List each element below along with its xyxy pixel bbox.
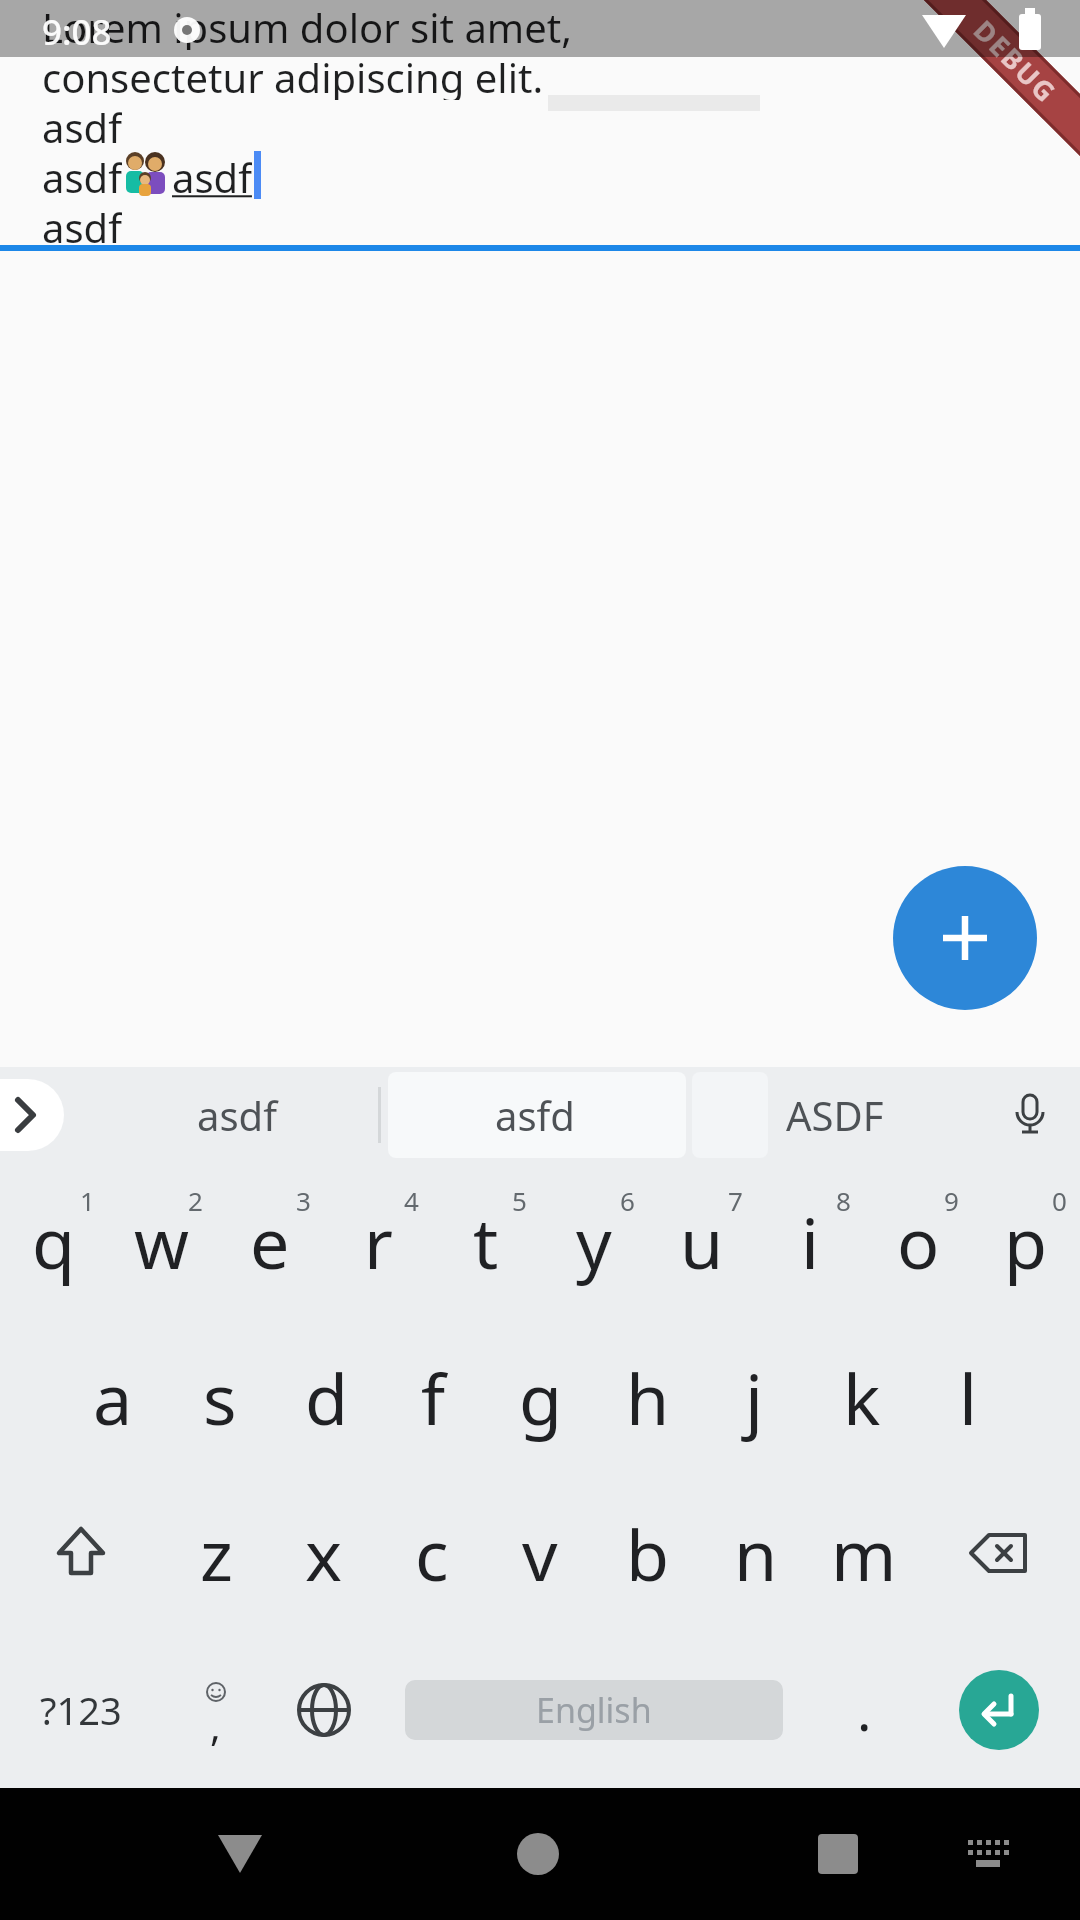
- staticText: asdf: [42, 150, 122, 200]
- staticText: r: [364, 1194, 393, 1289]
- button[interactable]: ,: [162, 1631, 270, 1788]
- button[interactable]: w: [108, 1163, 216, 1319]
- button[interactable]: e: [216, 1163, 324, 1319]
- staticText: k: [843, 1350, 881, 1445]
- staticText: 3: [296, 1183, 311, 1218]
- staticText: d: [305, 1350, 349, 1445]
- staticText: l: [959, 1350, 978, 1445]
- staticText: 6: [620, 1183, 635, 1218]
- staticText: asfd: [495, 1088, 575, 1142]
- button[interactable]: English: [378, 1631, 810, 1788]
- staticText: e: [250, 1194, 290, 1289]
- button[interactable]: b: [594, 1475, 702, 1631]
- button[interactable]: l: [915, 1319, 1022, 1475]
- button[interactable]: ?123: [0, 1631, 162, 1788]
- staticText: DEBUG: [966, 12, 1065, 111]
- staticText: f: [421, 1350, 446, 1445]
- staticText: s: [203, 1350, 237, 1445]
- button[interactable]: asfd: [435, 1067, 635, 1163]
- staticText: y: [576, 1194, 612, 1289]
- staticText: z: [200, 1506, 233, 1601]
- staticText: v: [522, 1506, 558, 1601]
- button[interactable]: d: [273, 1319, 380, 1475]
- button[interactable]: [766, 1812, 910, 1896]
- staticText: t: [473, 1194, 499, 1289]
- button[interactable]: q: [0, 1163, 108, 1319]
- button[interactable]: [1008, 1093, 1052, 1137]
- button[interactable]: z: [162, 1475, 270, 1631]
- staticText: asdf: [172, 150, 252, 200]
- button[interactable]: [918, 1475, 1080, 1631]
- button[interactable]: r: [324, 1163, 432, 1319]
- staticText: 2: [188, 1183, 203, 1218]
- staticText: 7: [728, 1183, 743, 1218]
- button[interactable]: n: [702, 1475, 810, 1631]
- button[interactable]: [0, 1079, 64, 1151]
- button[interactable]: p: [972, 1163, 1080, 1319]
- button[interactable]: v: [486, 1475, 594, 1631]
- staticText: asdf: [42, 100, 122, 150]
- staticText: asdf: [42, 200, 122, 250]
- staticText: j: [745, 1350, 764, 1445]
- button[interactable]: s: [166, 1319, 273, 1475]
- staticText: w: [134, 1194, 190, 1289]
- button[interactable]: [168, 1812, 312, 1896]
- staticText: English: [536, 1687, 652, 1733]
- staticText: g: [519, 1350, 563, 1445]
- staticText: p: [1004, 1194, 1048, 1289]
- button[interactable]: i: [756, 1163, 864, 1319]
- button[interactable]: o: [864, 1163, 972, 1319]
- staticText: 8: [836, 1183, 851, 1218]
- staticText: m: [831, 1506, 897, 1601]
- staticText: asdf: [197, 1088, 277, 1142]
- staticText: q: [32, 1194, 76, 1289]
- staticText: u: [680, 1194, 724, 1289]
- staticText: ?123: [40, 1684, 122, 1736]
- button[interactable]: [0, 1475, 162, 1631]
- button[interactable]: t: [432, 1163, 540, 1319]
- button[interactable]: [928, 1812, 1048, 1896]
- button[interactable]: u: [648, 1163, 756, 1319]
- button[interactable]: ASDF: [735, 1067, 935, 1163]
- staticText: x: [305, 1506, 343, 1601]
- staticText: consectetur adipiscing elit.: [42, 50, 544, 100]
- staticText: ,: [210, 1698, 221, 1752]
- button[interactable]: [466, 1812, 610, 1896]
- button[interactable]: g: [487, 1319, 594, 1475]
- button[interactable]: c: [378, 1475, 486, 1631]
- button[interactable]: f: [380, 1319, 487, 1475]
- staticText: 1: [80, 1183, 95, 1218]
- staticText: 9: [944, 1183, 959, 1218]
- staticText: ASDF: [786, 1088, 884, 1142]
- button[interactable]: y: [540, 1163, 648, 1319]
- staticText: .: [857, 1673, 872, 1747]
- button[interactable]: h: [594, 1319, 701, 1475]
- button[interactable]: a: [59, 1319, 166, 1475]
- staticText: o: [897, 1194, 940, 1289]
- button[interactable]: .: [810, 1631, 918, 1788]
- button[interactable]: [270, 1631, 378, 1788]
- button[interactable]: k: [808, 1319, 915, 1475]
- staticText: c: [415, 1506, 449, 1601]
- staticText: Lorem ipsum dolor sit amet,: [42, 0, 572, 50]
- staticText: i: [801, 1194, 820, 1289]
- button[interactable]: [918, 1631, 1080, 1788]
- staticText: 5: [512, 1183, 527, 1218]
- staticText: 0: [1052, 1183, 1067, 1218]
- button[interactable]: x: [270, 1475, 378, 1631]
- staticText: a: [93, 1350, 133, 1445]
- staticText: 4: [404, 1183, 419, 1218]
- button[interactable]: m: [810, 1475, 918, 1631]
- button[interactable]: [893, 866, 1037, 1010]
- staticText: 9:08: [42, 8, 112, 56]
- staticText: h: [626, 1350, 670, 1445]
- staticText: b: [626, 1506, 670, 1601]
- button[interactable]: j: [701, 1319, 808, 1475]
- staticText: n: [734, 1506, 778, 1601]
- button[interactable]: asdf: [137, 1067, 337, 1163]
